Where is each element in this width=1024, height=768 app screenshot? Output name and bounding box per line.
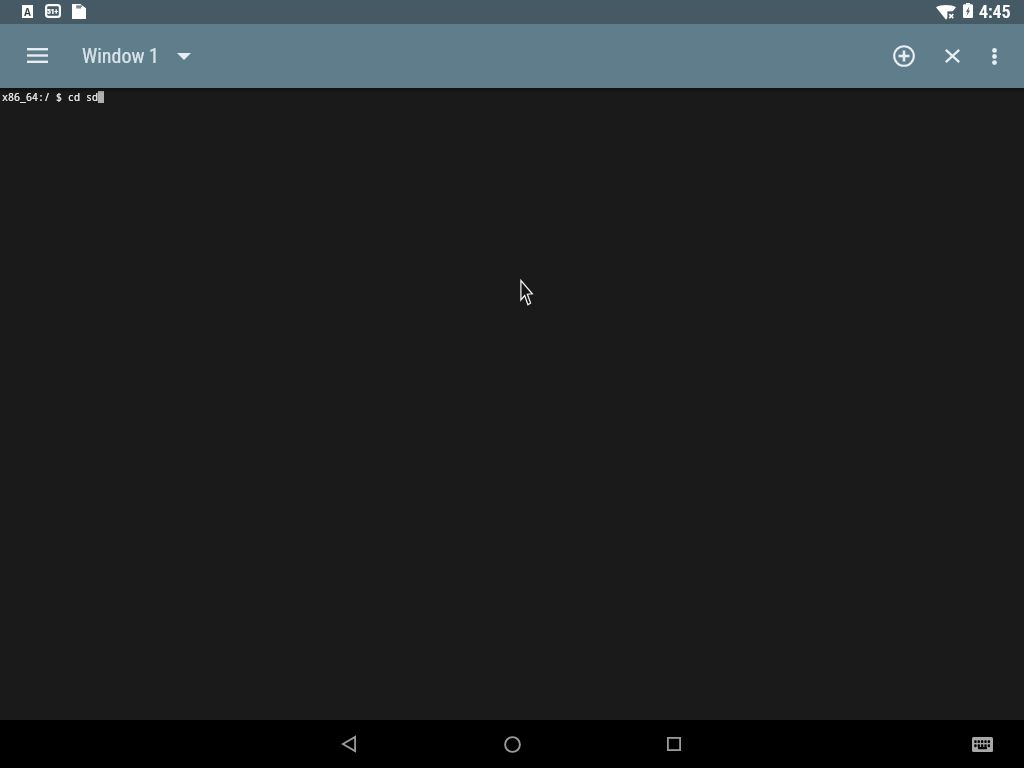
button[interactable]: New session [880, 24, 928, 88]
staticText: Window 1 [82, 44, 159, 67]
button[interactable]: Window 1 [72, 24, 200, 88]
button[interactable]: More options [970, 24, 1018, 88]
button[interactable]: Open navigation drawer [11, 23, 63, 87]
button[interactable]: Back [309, 720, 389, 768]
staticText: x86_64:/ $ cd sd [2, 90, 98, 104]
staticText: 4:45 [979, 1, 1011, 22]
button[interactable]: Show keyboard [950, 720, 1014, 768]
staticText: 51+ [47, 7, 59, 16]
staticText: A [24, 5, 31, 18]
button[interactable]: Recent apps [634, 720, 714, 768]
button[interactable]: Close session [928, 24, 976, 88]
button[interactable]: Home [472, 720, 552, 768]
